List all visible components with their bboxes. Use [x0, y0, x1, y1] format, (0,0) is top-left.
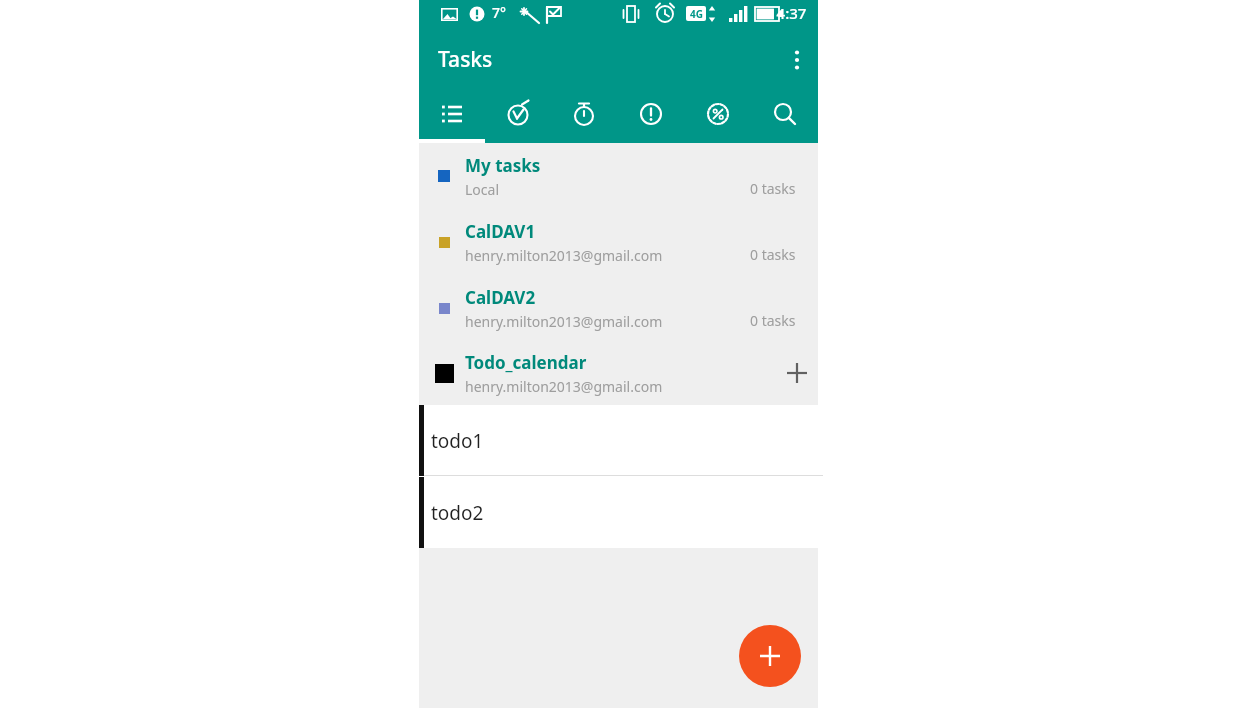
staticText: 4G [690, 7, 703, 21]
button[interactable]: Todo_calendar [419, 341, 818, 405]
staticText: henry.milton2013@gmail.com [465, 312, 663, 331]
staticText: Todo_calendar [465, 351, 587, 374]
button[interactable]: Task lists [419, 90, 485, 143]
button[interactable]: CalDAV2 [419, 275, 818, 341]
staticText: Tasks [438, 45, 493, 74]
button[interactable]: Add [739, 625, 801, 687]
staticText: todo1 [431, 428, 484, 454]
staticText: CalDAV1 [465, 220, 536, 243]
button[interactable]: Progress [684, 90, 751, 143]
button[interactable]: Add task [777, 353, 817, 393]
staticText: henry.milton2013@gmail.com [465, 377, 663, 396]
button[interactable]: Priority [617, 90, 684, 143]
staticText: My tasks [465, 154, 541, 177]
staticText: 7° [492, 3, 506, 22]
button[interactable]: Alarms [485, 90, 551, 143]
button[interactable]: todo2 [419, 477, 818, 548]
button[interactable]: todo1 [419, 405, 818, 476]
staticText: 0 tasks [750, 179, 796, 198]
staticText: CalDAV2 [465, 286, 536, 309]
button[interactable]: My tasks [419, 143, 818, 209]
staticText: 14:37 [768, 3, 807, 23]
button[interactable]: Timers [551, 90, 617, 143]
staticText: henry.milton2013@gmail.com [465, 246, 663, 265]
staticText: 0 tasks [750, 311, 796, 330]
button[interactable]: Search [751, 90, 818, 143]
staticText: Local [465, 180, 499, 199]
button[interactable]: More options [777, 40, 817, 80]
staticText: todo2 [431, 500, 484, 526]
staticText: 0 tasks [750, 245, 796, 264]
button[interactable]: CalDAV1 [419, 209, 818, 275]
